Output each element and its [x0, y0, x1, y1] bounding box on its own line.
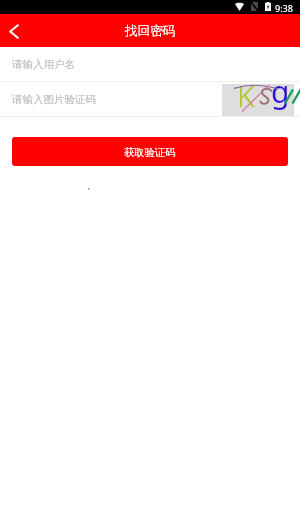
staticText: K — [237, 75, 255, 116]
staticText: 找回密码 — [125, 23, 176, 39]
button[interactable]: Refresh captcha image — [222, 83, 294, 117]
staticText: 请输入用户名 — [12, 58, 75, 71]
staticText: 获取验证码 — [124, 146, 176, 159]
staticText: 请输入图片验证码 — [12, 93, 96, 106]
button[interactable]: 获取验证码 — [12, 137, 288, 166]
button[interactable]: 请输入用户名 — [0, 47, 300, 82]
staticText: 9:38 — [275, 2, 293, 14]
staticText: g — [271, 71, 290, 112]
button[interactable]: Back — [0, 16, 30, 46]
